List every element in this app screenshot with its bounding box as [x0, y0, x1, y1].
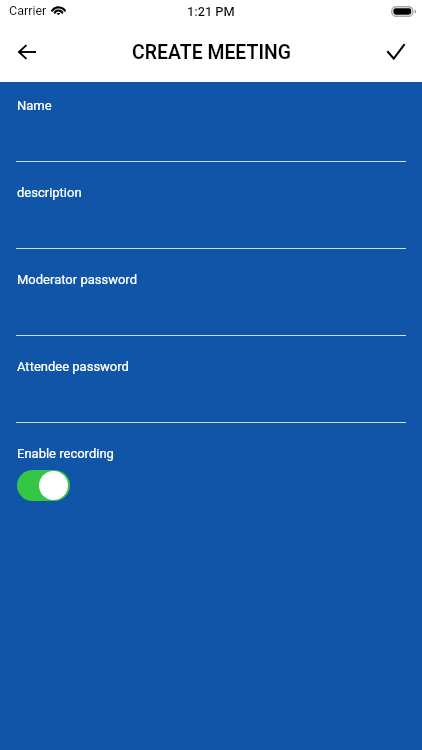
button[interactable]: description	[16, 181, 406, 249]
button[interactable]: Save	[372, 28, 420, 76]
button[interactable]: Back	[3, 28, 51, 76]
button[interactable]: Enable recording toggle	[17, 470, 70, 501]
staticText: Enable recording	[17, 446, 114, 461]
staticText: description	[17, 185, 82, 200]
staticText: Attendee password	[17, 359, 129, 374]
staticText: 1:21 PM	[187, 4, 235, 19]
button[interactable]: Attendee password	[16, 355, 406, 423]
staticText: Name	[17, 98, 52, 113]
staticText: CREATE MEETING	[132, 41, 291, 64]
staticText: Moderator password	[17, 272, 137, 287]
button[interactable]: Enable recording	[16, 441, 406, 501]
button[interactable]: Moderator password	[16, 268, 406, 336]
staticText: Carrier	[9, 3, 47, 18]
button[interactable]: Name	[16, 94, 406, 162]
